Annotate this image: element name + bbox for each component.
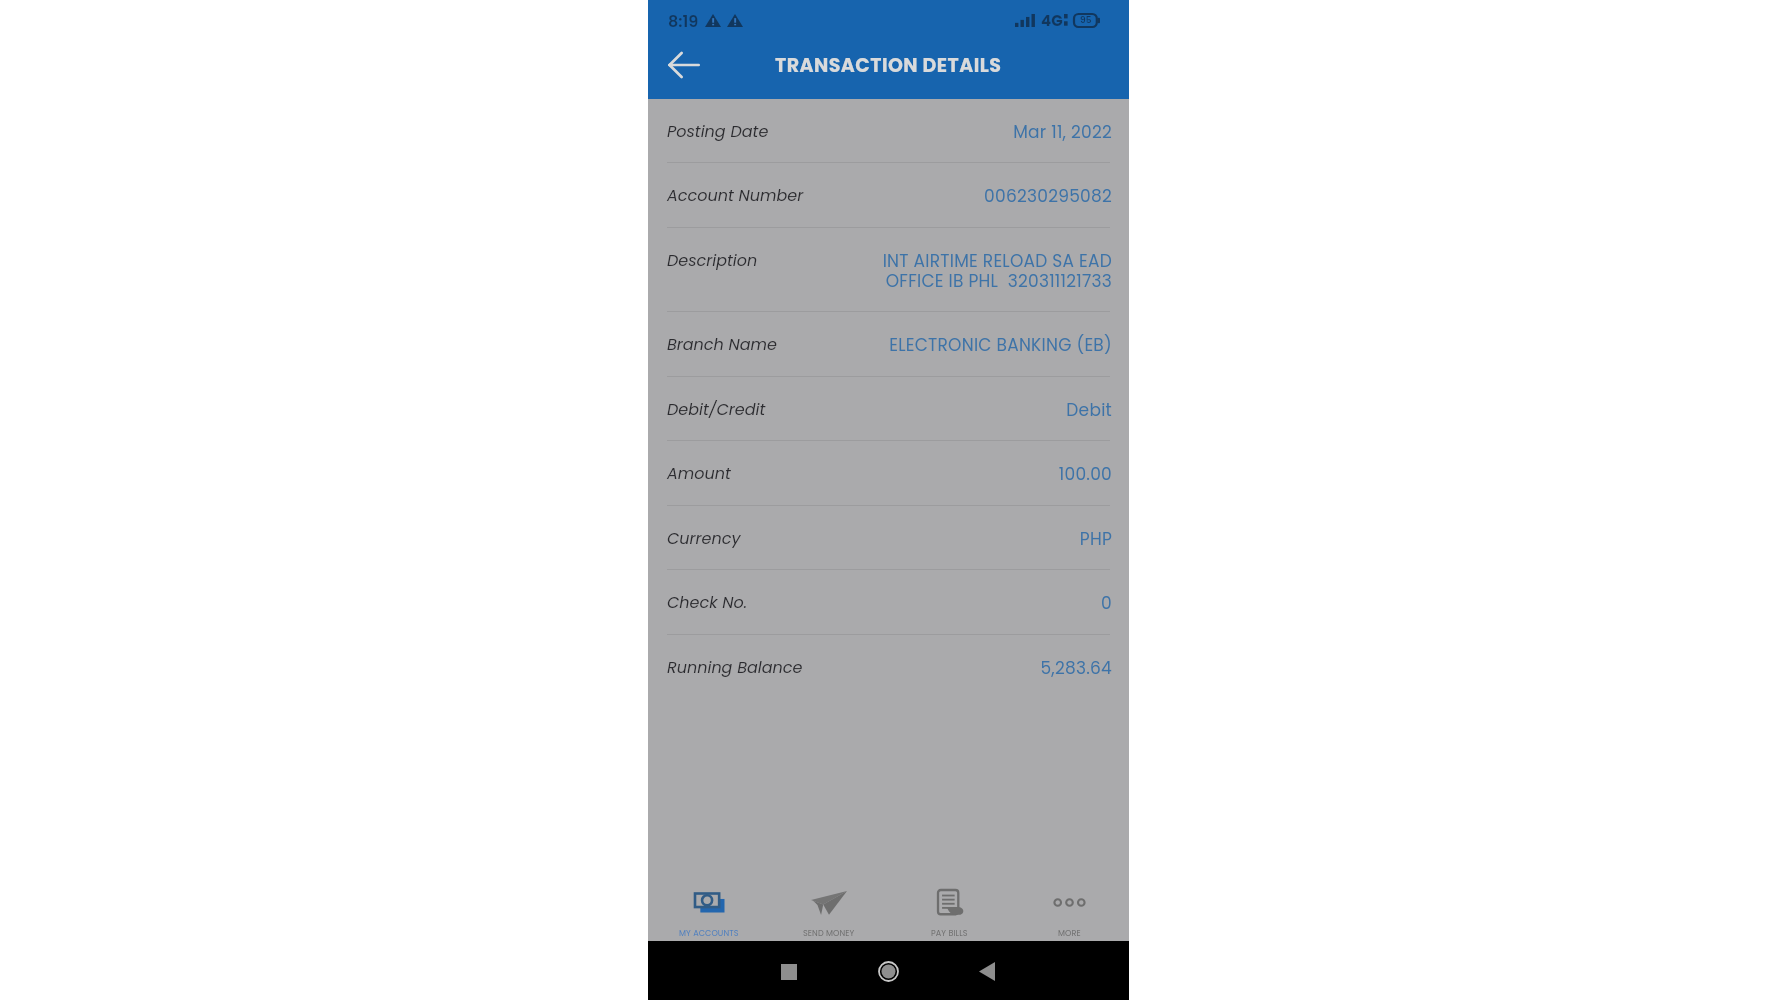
staticText: 0	[1101, 591, 1112, 615]
staticText: Mar 11, 2022	[1013, 120, 1112, 144]
staticText: 95	[1080, 14, 1092, 27]
button[interactable]: Amount	[648, 441, 1129, 506]
staticText: Amount	[667, 462, 731, 484]
staticText: Check No.	[667, 591, 748, 613]
staticText: Debit/Credit	[667, 398, 766, 420]
staticText: Currency	[667, 527, 741, 549]
button[interactable]: Description	[648, 228, 1129, 312]
button[interactable]: Account Number	[648, 163, 1129, 228]
button[interactable]: Running Balance	[648, 635, 1129, 699]
staticText: Debit	[1066, 398, 1112, 422]
staticText: 100.00	[1058, 462, 1112, 486]
button[interactable]: Posting Date	[648, 99, 1129, 163]
button[interactable]: SEND MONEY	[769, 882, 889, 941]
staticText: PHP	[1079, 527, 1112, 551]
button[interactable]: Home	[857, 941, 919, 1000]
button[interactable]: Debit/Credit	[648, 377, 1129, 441]
button[interactable]: Recents	[758, 941, 820, 1000]
staticText: 5,283.64	[1040, 656, 1112, 680]
button[interactable]: MY ACCOUNTS	[648, 882, 769, 941]
staticText: TRANSACTION DETAILS	[775, 52, 1002, 79]
staticText: SEND MONEY	[803, 927, 855, 938]
button[interactable]: PAY BILLS	[889, 882, 1009, 941]
staticText: 4G	[1041, 10, 1063, 31]
staticText: 006230295082	[984, 184, 1112, 208]
staticText: MORE	[1058, 927, 1081, 938]
staticText: Posting Date	[667, 120, 769, 142]
staticText: Account Number	[667, 184, 804, 206]
button[interactable]: MORE	[1009, 882, 1129, 941]
staticText: PAY BILLS	[931, 927, 968, 938]
staticText: INT AIRTIME RELOAD SA EAD OFFICE IB PHL …	[882, 249, 1112, 293]
button[interactable]: Back	[956, 941, 1018, 1000]
staticText: 8:19	[668, 10, 699, 32]
staticText: MY ACCOUNTS	[679, 927, 739, 938]
staticText: Description	[667, 249, 758, 271]
staticText: Branch Name	[667, 333, 778, 355]
button[interactable]: Branch Name	[648, 312, 1129, 377]
button[interactable]: Check No.	[648, 570, 1129, 635]
button[interactable]: Currency	[648, 506, 1129, 570]
staticText: ELECTRONIC BANKING (EB)	[889, 333, 1112, 357]
button[interactable]: Back	[648, 36, 718, 94]
staticText: Running Balance	[667, 656, 803, 678]
